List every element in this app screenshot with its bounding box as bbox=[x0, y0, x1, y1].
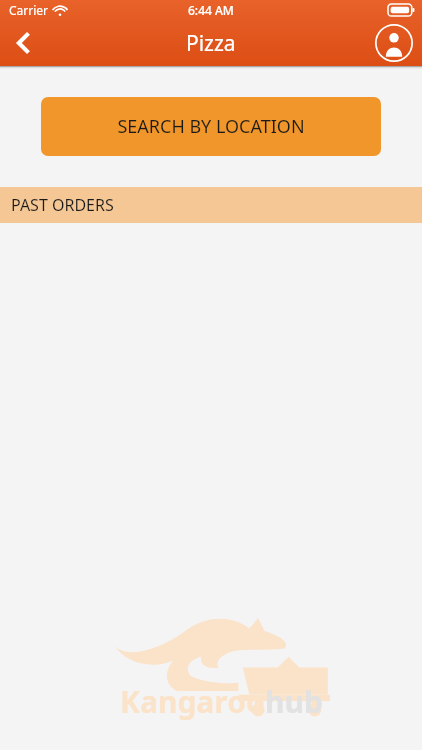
staticText: Kangaroo bbox=[120, 681, 265, 722]
staticText: Pizza bbox=[186, 29, 236, 58]
staticText: 6:44 AM bbox=[188, 2, 234, 18]
button[interactable]: Profile bbox=[366, 20, 422, 66]
staticText: Carrier bbox=[9, 2, 49, 18]
staticText: hub bbox=[265, 681, 323, 722]
staticText: PAST ORDERS bbox=[11, 194, 114, 216]
button[interactable]: SEARCH BY LOCATION bbox=[41, 97, 381, 156]
staticText: SEARCH BY LOCATION bbox=[117, 114, 305, 139]
button[interactable]: Back bbox=[0, 20, 48, 66]
